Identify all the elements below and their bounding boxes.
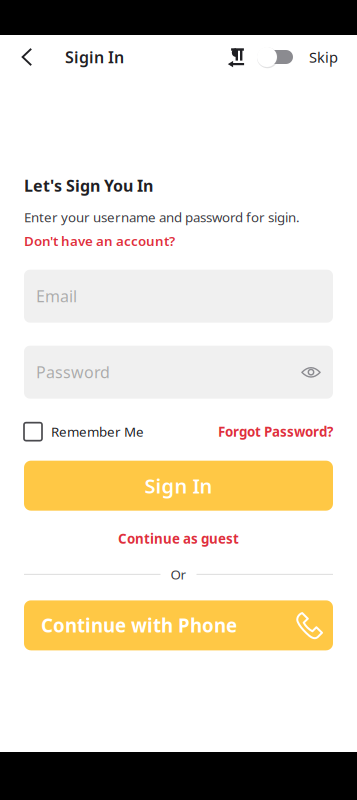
button[interactable]: Show password [299, 360, 323, 384]
button[interactable]: Writing direction [222, 35, 250, 79]
staticText: Email [36, 285, 77, 307]
staticText: Skip [309, 47, 338, 67]
staticText: Remember Me [51, 423, 144, 440]
staticText: Enter your username and password for sig… [24, 208, 300, 226]
button[interactable]: Remember Me [24, 418, 144, 446]
staticText: Continue as guest [118, 530, 239, 547]
staticText: Let's Sign You In [24, 175, 153, 196]
button[interactable]: Sign In [24, 461, 333, 511]
button[interactable]: Back [0, 35, 49, 79]
button[interactable]: Continue as guest [24, 530, 333, 547]
staticText: Or [170, 565, 186, 583]
button[interactable]: Forgot Password? [218, 418, 333, 446]
staticText: Don't have an account? [24, 232, 175, 250]
staticText: Forgot Password? [218, 423, 333, 440]
button[interactable]: Continue with Phone [24, 600, 333, 650]
staticText: Password [36, 361, 110, 383]
staticText: Sign In [144, 472, 212, 499]
button[interactable]: Skip [301, 35, 357, 79]
button[interactable]: Toggle [257, 35, 293, 79]
staticText: Continue with Phone [41, 613, 237, 638]
button[interactable]: Don't have an account? [24, 232, 175, 250]
staticText: Sigin In [65, 46, 124, 68]
